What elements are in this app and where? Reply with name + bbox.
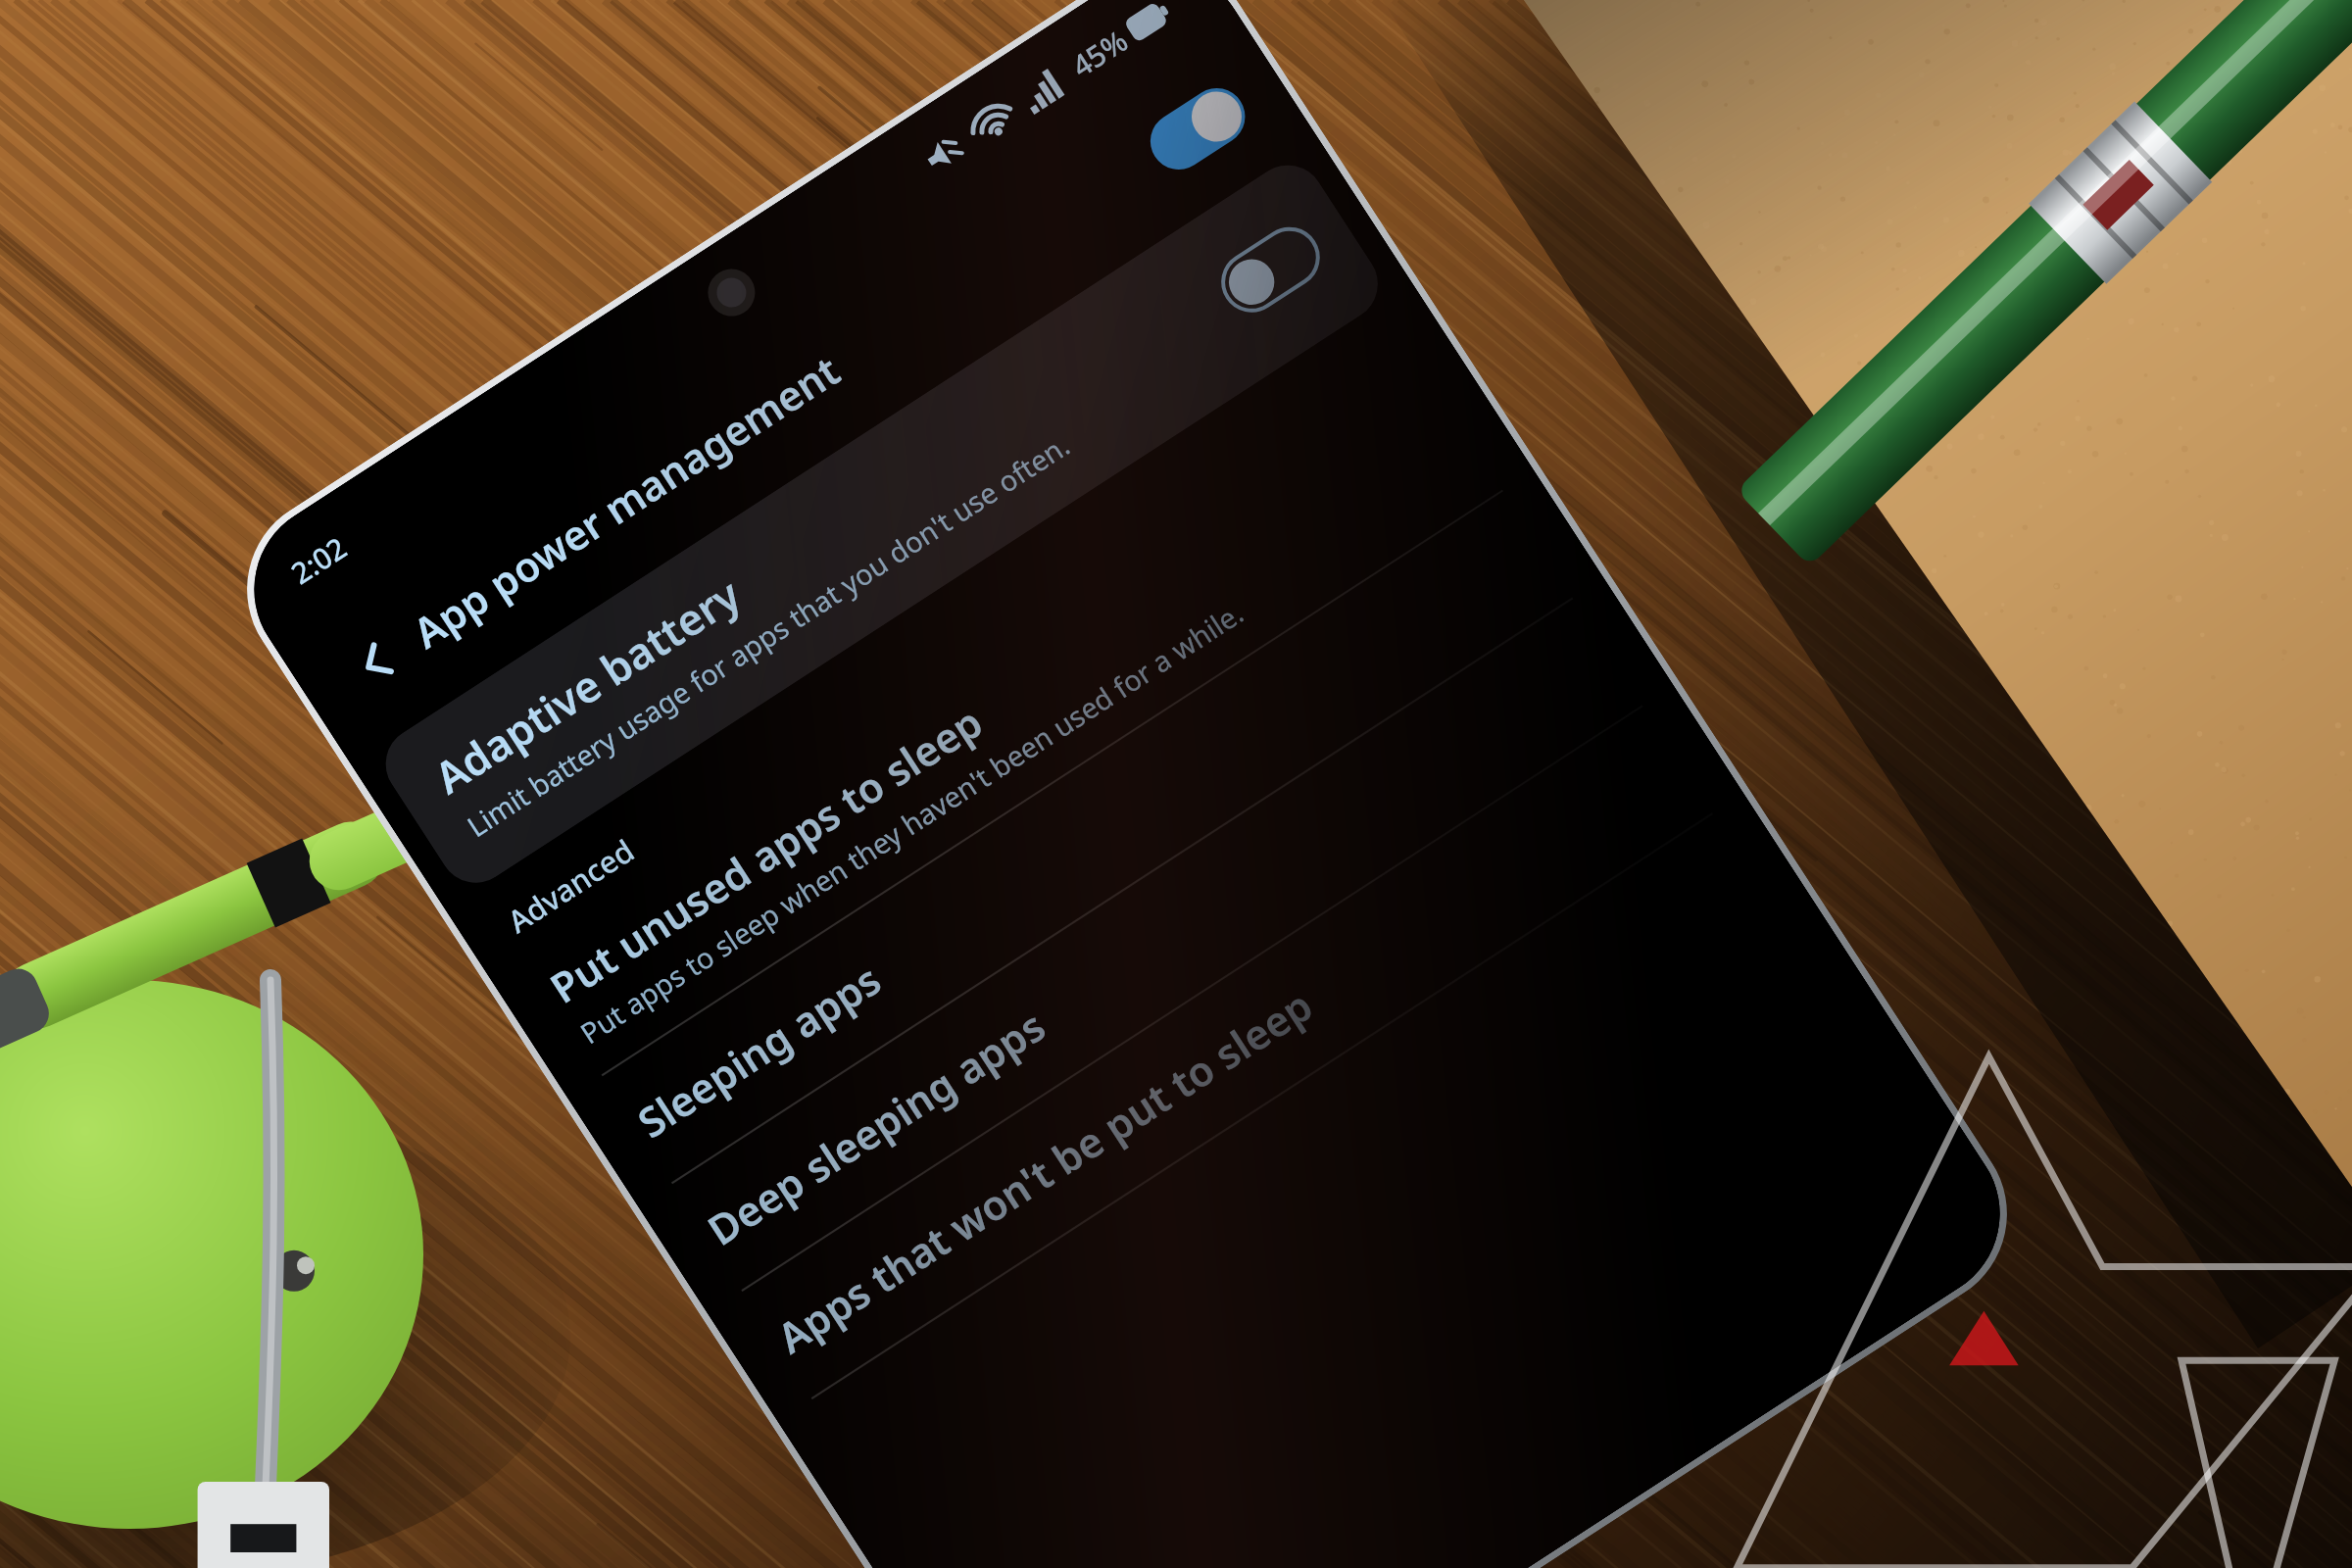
- button[interactable]: Put unused apps to sleep: [487, 346, 1533, 1097]
- staticText: Adaptive battery: [423, 565, 751, 806]
- button[interactable]: Adaptive battery: [372, 151, 1392, 897]
- staticText: Sleeping apps: [627, 951, 891, 1150]
- staticText: Put unused apps to sleep: [539, 693, 993, 1015]
- staticText: 45%: [1064, 20, 1135, 86]
- staticText: 2:02: [283, 527, 354, 593]
- staticText: Put apps to sleep when they haven't been…: [573, 593, 1250, 1052]
- button[interactable]: Sleeping apps: [568, 471, 1603, 1205]
- button[interactable]: Deep sleeping apps: [638, 579, 1673, 1312]
- button[interactable]: Adaptive battery, off: [1212, 218, 1329, 321]
- staticText: Apps that won't be put to sleep: [766, 976, 1323, 1365]
- staticText: Limit battery usage for apps that you do…: [459, 426, 1076, 845]
- staticText: App power management: [402, 342, 850, 660]
- staticText: Advanced: [500, 829, 642, 942]
- button[interactable]: App power management, on: [1140, 77, 1256, 180]
- staticText: Deep sleeping apps: [696, 997, 1055, 1257]
- button[interactable]: Apps that won't be put to sleep: [708, 686, 1743, 1420]
- button[interactable]: Back: [324, 611, 427, 714]
